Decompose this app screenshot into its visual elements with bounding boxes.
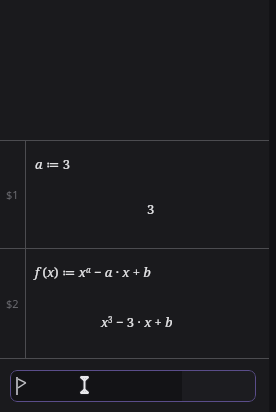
- button[interactable]: Expression input: [10, 370, 256, 402]
- staticText: $2: [6, 296, 19, 311]
- staticText: 3: [147, 200, 155, 218]
- staticText: x3 − 3 · x + b: [101, 313, 173, 331]
- staticText: f (x) ≔ xa − a · x + b: [35, 263, 151, 281]
- staticText: $1: [6, 187, 19, 202]
- staticText: a ≔ 3: [35, 155, 70, 173]
- button[interactable]: $1: [0, 141, 276, 248]
- button[interactable]: $2: [0, 249, 276, 358]
